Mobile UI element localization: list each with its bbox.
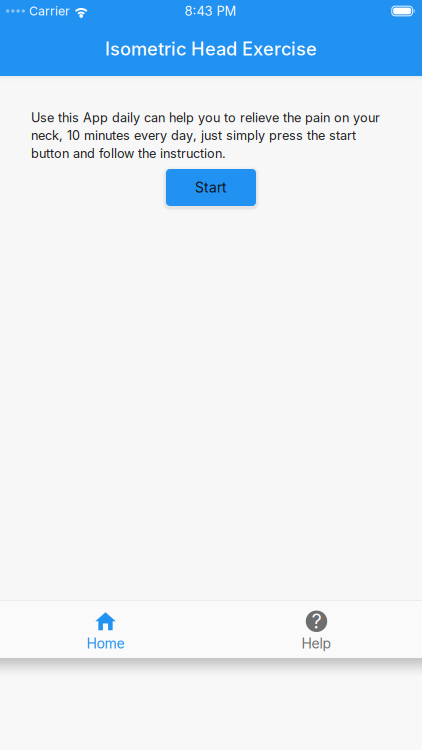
staticText: ?	[311, 609, 321, 633]
staticText: Isometric Head Exercise	[105, 38, 317, 60]
staticText: Start	[195, 179, 227, 196]
staticText: 8:43 PM	[184, 3, 236, 19]
staticText: Use this App daily can help you to relie…	[31, 110, 380, 161]
button[interactable]: Home	[0, 598, 211, 660]
staticText: Home	[86, 635, 124, 652]
staticText: Carrier	[29, 4, 70, 18]
staticText: Help	[301, 635, 331, 652]
button[interactable]: Start	[166, 169, 256, 206]
button[interactable]: ?	[211, 598, 422, 660]
